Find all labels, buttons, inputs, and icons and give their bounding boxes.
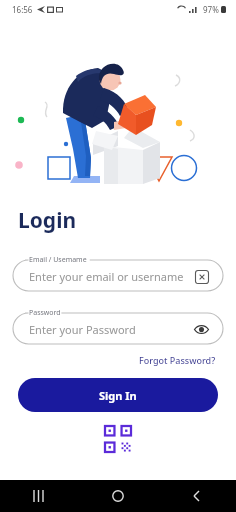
- staticText: Enter your Password: [29, 322, 194, 337]
- button[interactable]: Email / Usemame: [13, 253, 223, 293]
- button[interactable]: Home: [101, 480, 135, 512]
- staticText: Forgot Password?: [139, 354, 216, 366]
- button[interactable]: Show password: [194, 322, 209, 337]
- button[interactable]: Sign In: [18, 378, 218, 412]
- button[interactable]: Password: [13, 306, 223, 346]
- staticText: 16:56: [12, 4, 33, 15]
- button[interactable]: Recents: [22, 480, 56, 512]
- staticText: Login: [18, 206, 77, 235]
- staticText: Enter your email or username: [29, 269, 195, 284]
- staticText: Email / Usemame: [29, 255, 87, 265]
- staticText: Sign In: [99, 388, 137, 403]
- button[interactable]: Forgot Password?: [137, 352, 218, 368]
- button[interactable]: Back: [180, 480, 214, 512]
- button[interactable]: Clear text: [195, 270, 209, 284]
- staticText: 97%: [203, 4, 219, 15]
- button[interactable]: Scan QR code: [105, 426, 131, 452]
- staticText: Password: [29, 308, 61, 318]
